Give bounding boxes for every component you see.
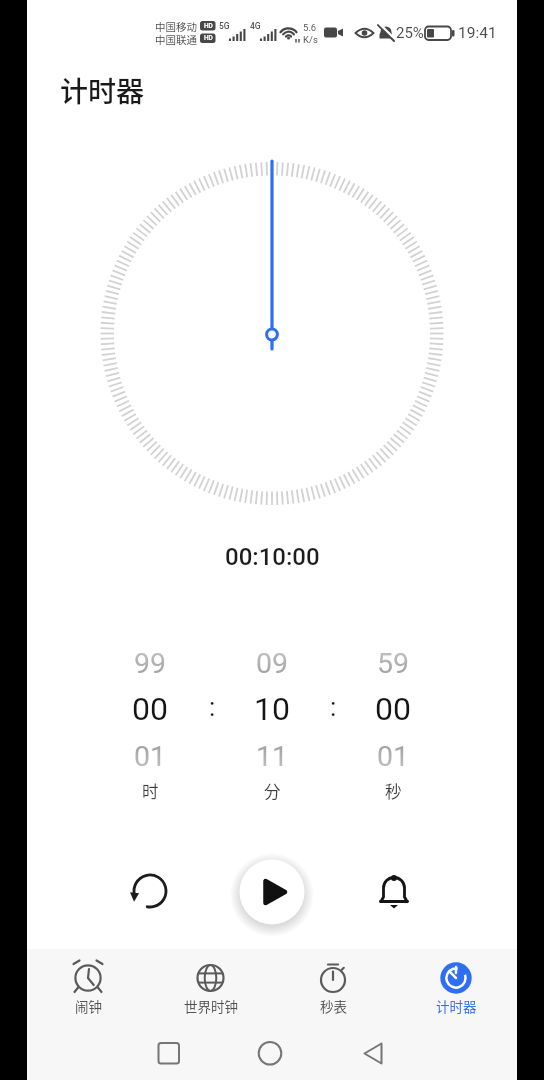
staticText: 11 <box>256 740 289 773</box>
staticText: 10 <box>254 690 290 728</box>
button[interactable] <box>149 950 271 1020</box>
staticText: 09 <box>256 647 289 680</box>
staticText: : <box>209 692 216 722</box>
staticText: 00 <box>375 690 411 728</box>
staticText: 秒 <box>385 779 402 803</box>
staticText: 25% <box>396 24 424 42</box>
staticText: 闹钟 <box>75 996 102 1016</box>
staticText: : <box>330 692 337 722</box>
staticText: 4G <box>250 21 261 31</box>
button[interactable] <box>124 865 176 917</box>
staticText: 00:10:00 <box>225 543 320 571</box>
staticText: 时 <box>142 779 159 803</box>
staticText: 00 <box>132 690 168 728</box>
button[interactable] <box>27 950 149 1020</box>
staticText: 中国联通 <box>155 32 197 46</box>
button[interactable] <box>246 1030 298 1076</box>
staticText: 01 <box>134 740 167 773</box>
staticText: 99 <box>134 647 167 680</box>
staticText: 计时器 <box>436 996 477 1016</box>
staticText: HD <box>204 34 213 42</box>
staticText: HD <box>204 22 213 30</box>
button[interactable] <box>394 950 517 1020</box>
button[interactable]: 10 <box>212 685 332 733</box>
staticText: 世界时钟 <box>184 996 238 1016</box>
staticText: 5G <box>219 21 230 31</box>
button[interactable] <box>368 865 420 917</box>
staticText: 秒表 <box>320 996 347 1016</box>
staticText: 59 <box>377 647 410 680</box>
staticText: 分 <box>264 779 281 803</box>
staticText: 5.6 <box>303 22 317 33</box>
staticText: K/s <box>303 34 318 45</box>
staticText: 19:41 <box>458 24 497 42</box>
staticText: 中国移动 <box>155 19 197 33</box>
button[interactable] <box>239 859 305 925</box>
staticText: 01 <box>377 740 410 773</box>
button[interactable] <box>350 1030 402 1076</box>
button[interactable] <box>142 1030 194 1076</box>
button[interactable] <box>272 950 394 1020</box>
staticText: 计时器 <box>60 70 145 106</box>
button[interactable]: 00 <box>333 685 453 733</box>
button[interactable]: 00 <box>90 685 210 733</box>
